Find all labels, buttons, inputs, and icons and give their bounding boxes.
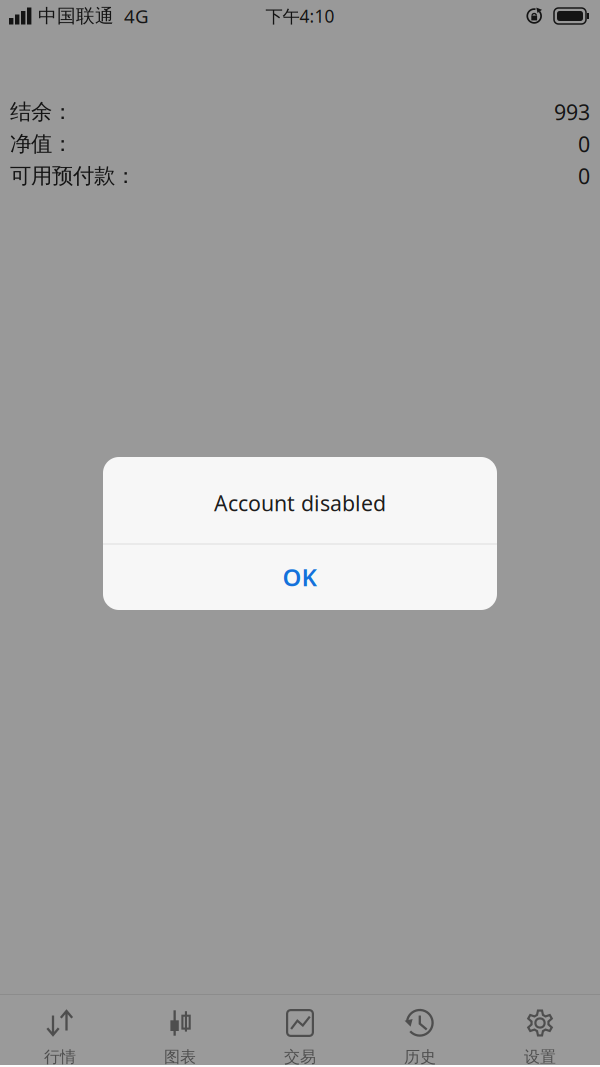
staticText: 4G — [124, 4, 149, 28]
staticText: 993 — [554, 98, 590, 126]
staticText: 0 — [578, 162, 590, 190]
button[interactable]: 图表 — [120, 995, 240, 1065]
staticText: 历史 — [404, 1047, 436, 1067]
staticText: Account disabled — [214, 489, 386, 517]
staticText: 中国联通 — [38, 4, 114, 27]
button[interactable]: 历史 — [360, 995, 480, 1065]
staticText: 可用预付款： — [10, 163, 136, 189]
staticText: 净值： — [10, 131, 73, 157]
staticText: 下午4:10 — [265, 4, 334, 27]
button[interactable]: OK — [103, 544, 497, 609]
staticText: 设置 — [524, 1047, 556, 1067]
staticText: OK — [282, 561, 317, 593]
button[interactable]: 行情 — [0, 995, 120, 1065]
button[interactable]: 设置 — [480, 995, 600, 1065]
button[interactable]: 交易 — [240, 995, 360, 1065]
staticText: 行情 — [44, 1047, 76, 1067]
staticText: 结余： — [10, 99, 73, 125]
staticText: 0 — [578, 130, 590, 158]
staticText: 交易 — [284, 1047, 316, 1067]
staticText: 图表 — [164, 1047, 196, 1067]
